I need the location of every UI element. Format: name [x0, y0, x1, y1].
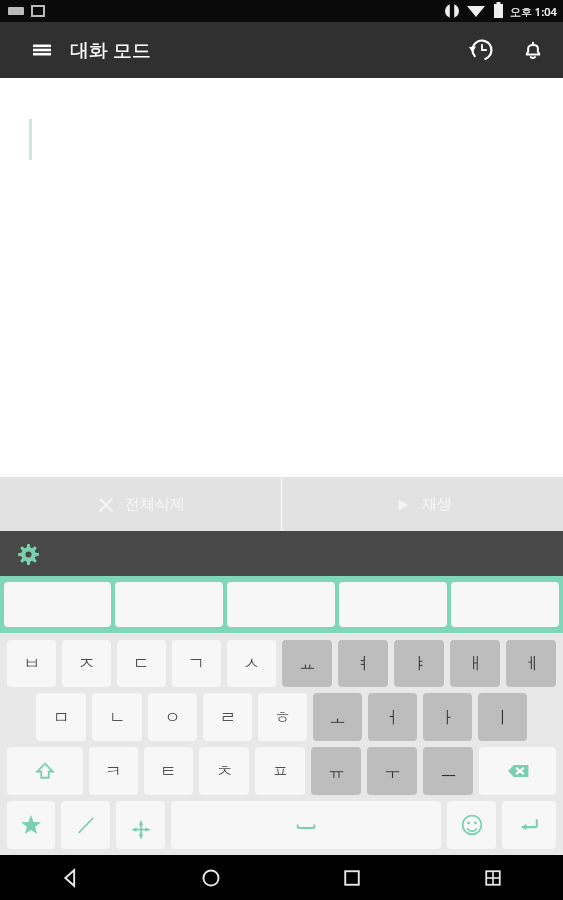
button[interactable]: Keyboard settings	[10, 536, 46, 572]
staticText: ㅛ	[299, 653, 316, 674]
staticText: ㅓ	[384, 707, 401, 728]
staticText: ㅈ	[78, 653, 95, 674]
button[interactable]: ㅗ	[313, 693, 362, 741]
staticText: ㅗ	[329, 707, 346, 728]
staticText: ㅋ	[105, 761, 122, 782]
button[interactable]: ㅡ	[423, 747, 473, 795]
button[interactable]: Emoji	[447, 801, 496, 849]
button[interactable]: Space	[171, 801, 441, 849]
staticText: ㅣ	[494, 707, 511, 728]
button[interactable]: Enter	[502, 801, 556, 849]
button[interactable]: ㅁ	[36, 693, 86, 741]
staticText: 전체삭제	[125, 495, 185, 514]
button[interactable]: ㅔ	[506, 640, 556, 687]
staticText: ㅑ	[411, 653, 428, 674]
button[interactable]: Suggestion 4	[339, 582, 447, 627]
button[interactable]: Menu	[22, 30, 62, 70]
staticText: ㅁ	[53, 707, 70, 728]
staticText: ㅡ	[440, 761, 457, 782]
button[interactable]: Recents	[281, 855, 422, 900]
staticText: ㅔ	[523, 653, 540, 674]
button[interactable]: Back	[0, 855, 140, 900]
button[interactable]: ㅕ	[338, 640, 388, 687]
button[interactable]: ㅠ	[311, 747, 361, 795]
button[interactable]: Suggestion 5	[451, 582, 559, 627]
button[interactable]: ㅑ	[394, 640, 444, 687]
staticText: 대화 모드	[70, 37, 151, 63]
staticText: ㅎ	[274, 707, 291, 728]
button[interactable]: Suggestion 3	[227, 582, 335, 627]
button[interactable]: ㄱ	[172, 640, 221, 687]
staticText: ㄷ	[133, 653, 150, 674]
button[interactable]: ㅊ	[199, 747, 249, 795]
staticText: ㄴ	[109, 707, 126, 728]
staticText: ㅇ	[164, 707, 181, 728]
button[interactable]: Numbers and symbols	[116, 801, 165, 849]
staticText: ㅅ	[243, 653, 260, 674]
button[interactable]: History	[458, 26, 506, 74]
button[interactable]: ㅓ	[368, 693, 417, 741]
button[interactable]: Suggestion 2	[115, 582, 223, 627]
button[interactable]: ㅅ	[227, 640, 276, 687]
button[interactable]: Home	[140, 855, 281, 900]
staticText: ㅊ	[216, 761, 233, 782]
staticText: ㄱ	[188, 653, 205, 674]
button[interactable]: ㅂ	[7, 640, 56, 687]
button[interactable]: ㅛ	[282, 640, 332, 687]
button[interactable]: ㅎ	[258, 693, 307, 741]
staticText: ㅜ	[384, 761, 401, 782]
button[interactable]: Favorites	[7, 801, 55, 849]
button[interactable]: Shift	[7, 747, 83, 795]
button[interactable]: ㅣ	[478, 693, 527, 741]
button[interactable]: ㅐ	[450, 640, 500, 687]
button[interactable]: Korean English toggle	[61, 801, 110, 849]
staticText: ㅂ	[23, 653, 40, 674]
button[interactable]: Suggestion 1	[4, 582, 111, 627]
staticText: ㅌ	[160, 761, 177, 782]
button[interactable]: ㅇ	[148, 693, 197, 741]
button[interactable]: ㅌ	[144, 747, 193, 795]
staticText: 재생	[422, 495, 452, 514]
button[interactable]: Notifications	[509, 26, 557, 74]
staticText: ㅏ	[439, 707, 456, 728]
staticText: ㄹ	[219, 707, 236, 728]
button[interactable]: ㅋ	[89, 747, 138, 795]
button[interactable]: Backspace	[479, 747, 556, 795]
staticText: ㅠ	[328, 761, 345, 782]
staticText: ㅍ	[272, 761, 289, 782]
button[interactable]: ㅈ	[62, 640, 111, 687]
button[interactable]: ㅏ	[423, 693, 472, 741]
button[interactable]: Multi window	[422, 855, 563, 900]
button[interactable]: ㅍ	[255, 747, 305, 795]
staticText: ㅕ	[355, 653, 372, 674]
staticText: 오후 1:04	[510, 4, 557, 19]
staticText: ㅐ	[467, 653, 484, 674]
button[interactable]: ㄷ	[117, 640, 166, 687]
button[interactable]: ㄹ	[203, 693, 252, 741]
button[interactable]: ㅜ	[367, 747, 417, 795]
button[interactable]: ㄴ	[92, 693, 142, 741]
